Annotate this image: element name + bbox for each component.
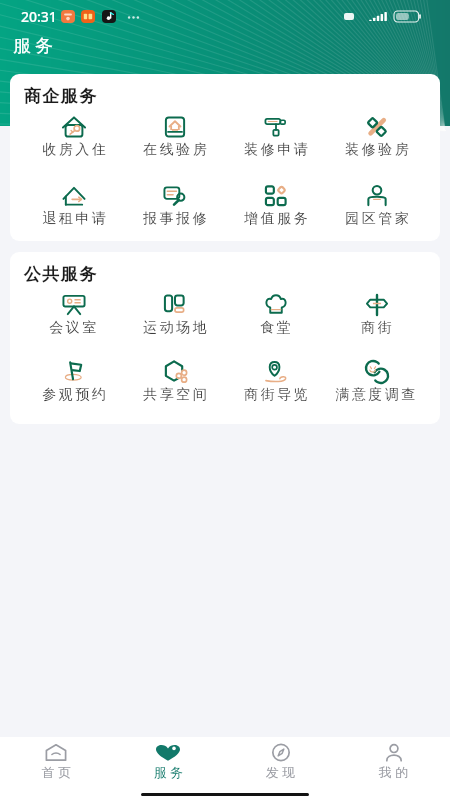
staticText: 增值服务 [243,210,309,228]
staticText: 我的 [377,764,410,780]
button[interactable]: 增值服务 [225,182,326,241]
button[interactable]: 满意度调查 [326,358,427,424]
staticText: 服务 [152,764,185,780]
staticText: 参观预约 [41,386,107,404]
button[interactable]: 商街导览 [225,358,326,424]
staticText: 在线验房 [142,141,208,159]
staticText: 会议室 [49,319,99,337]
staticText: 服务 [11,35,55,58]
button[interactable]: 参观预约 [23,358,124,424]
button[interactable]: 装修申请 [225,113,326,182]
staticText: 公共服务 [23,264,97,285]
staticText: 装修验房 [344,141,410,159]
staticText: 共享空间 [142,386,208,404]
staticText: 装修申请 [243,141,309,159]
staticText: 商街导览 [243,386,309,404]
button[interactable]: 首页 [0,737,112,789]
staticText: 首页 [40,764,73,780]
button[interactable]: 服务 [112,737,224,789]
staticText: 运动场地 [142,319,208,337]
button[interactable]: 食堂 [225,291,326,358]
button[interactable]: 发现 [224,737,337,789]
button[interactable]: 园区管家 [326,182,427,241]
button[interactable]: 运动场地 [124,291,225,358]
button[interactable]: 共享空间 [124,358,225,424]
staticText: 20:31 [21,7,57,26]
button[interactable]: 收房入住 [23,113,124,182]
button[interactable]: 商街 [326,291,427,358]
staticText: 满意度调查 [335,386,418,404]
staticText: 发现 [264,764,297,780]
staticText: 商企服务 [23,86,97,107]
staticText: 商街 [360,319,393,337]
button[interactable]: 在线验房 [124,113,225,182]
button[interactable]: 会议室 [23,291,124,358]
staticText: 食堂 [259,319,292,337]
staticText: 收房入住 [41,141,107,159]
button[interactable]: 装修验房 [326,113,427,182]
button[interactable]: 退租申请 [23,182,124,241]
button[interactable]: 我的 [337,737,450,789]
staticText: 园区管家 [344,210,410,228]
staticText: 报事报修 [142,210,208,228]
staticText: 退租申请 [41,210,107,228]
button[interactable]: 报事报修 [124,182,225,241]
